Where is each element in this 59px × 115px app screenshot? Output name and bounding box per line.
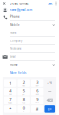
staticText: Email bbox=[10, 55, 16, 58]
staticText: TUV bbox=[22, 102, 25, 104]
button[interactable]: # bbox=[31, 105, 43, 113]
staticText: DEF bbox=[36, 85, 39, 87]
button[interactable]: 8 bbox=[17, 96, 30, 104]
staticText: Save bbox=[48, 2, 53, 5]
button[interactable]: 0 bbox=[17, 105, 30, 113]
button[interactable]: Save bbox=[47, 2, 54, 5]
staticText: 1 bbox=[9, 80, 11, 86]
staticText: 9 bbox=[36, 97, 38, 102]
staticText: 8 bbox=[23, 97, 25, 102]
staticText: # bbox=[36, 106, 39, 111]
staticText: 2 bbox=[23, 80, 25, 85]
staticText: 0 bbox=[23, 105, 25, 111]
button[interactable]: name@gmail.com bbox=[0, 7, 59, 13]
button[interactable]: Symbols bbox=[44, 79, 55, 87]
staticText: Company bbox=[10, 39, 22, 42]
button[interactable]: Mobile bbox=[0, 21, 59, 29]
staticText: Nickname bbox=[10, 47, 22, 50]
staticText: 5 bbox=[23, 88, 25, 93]
staticText: Name bbox=[10, 31, 17, 34]
staticText: JKL bbox=[23, 93, 25, 95]
staticText: 3 bbox=[36, 80, 38, 85]
staticText: Home bbox=[10, 63, 18, 67]
button[interactable]: go bbox=[44, 105, 55, 113]
staticText: 4 bbox=[9, 88, 11, 93]
button[interactable]: 5 bbox=[17, 88, 30, 95]
button[interactable]: Pause bbox=[44, 88, 55, 95]
staticText: +*# bbox=[47, 81, 52, 85]
staticText: WXYZ bbox=[35, 102, 39, 104]
button[interactable]: 3 bbox=[31, 79, 43, 87]
button[interactable]: Home bbox=[0, 61, 59, 69]
button[interactable]: * bbox=[4, 105, 16, 113]
button[interactable]: Close bbox=[1, 0, 7, 6]
staticText: More fields bbox=[10, 71, 26, 75]
staticText: GHI bbox=[9, 93, 11, 95]
button[interactable]: 9 bbox=[31, 96, 43, 104]
staticText: Phone bbox=[10, 15, 20, 18]
button[interactable]: 2 bbox=[17, 79, 30, 87]
staticText: * bbox=[9, 106, 11, 111]
staticText: 6 bbox=[36, 88, 38, 93]
button[interactable]: 4 bbox=[4, 88, 16, 95]
button[interactable]: More options bbox=[54, 0, 58, 7]
staticText: Create contact bbox=[10, 2, 29, 5]
staticText: MNO bbox=[36, 93, 39, 95]
button[interactable]: 1 bbox=[4, 79, 16, 87]
button[interactable]: 6 bbox=[31, 88, 43, 95]
staticText: name@gmail.com bbox=[10, 8, 32, 12]
staticText: 7 bbox=[9, 97, 11, 102]
staticText: Mobile bbox=[10, 23, 20, 27]
staticText: ABC bbox=[22, 85, 25, 87]
button[interactable]: 7 bbox=[4, 96, 16, 104]
staticText: PQRS bbox=[8, 102, 12, 104]
button[interactable]: Delete bbox=[44, 96, 55, 104]
staticText: go bbox=[48, 107, 52, 111]
button[interactable]: More fields bbox=[0, 69, 59, 77]
